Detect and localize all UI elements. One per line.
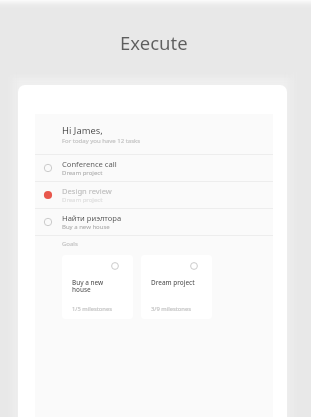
- staticText: Dream project: [62, 196, 103, 204]
- button[interactable]: Design review: [35, 182, 273, 208]
- button[interactable]: Dream project: [141, 255, 212, 319]
- staticText: Execute: [120, 30, 188, 55]
- staticText: Dream project: [151, 278, 195, 287]
- staticText: Design review: [62, 186, 112, 196]
- button[interactable]: Conference call: [35, 155, 273, 181]
- staticText: Dream project: [62, 169, 103, 177]
- staticText: Найти риэлтора: [62, 213, 122, 223]
- staticText: Goals: [62, 240, 78, 248]
- staticText: 1/5 milestones: [72, 305, 112, 313]
- staticText: 3/9 milestones: [151, 305, 191, 313]
- staticText: For today you have 12 tasks: [62, 137, 141, 145]
- button[interactable]: Найти риэлтора: [35, 209, 273, 235]
- button[interactable]: Buy a new house: [62, 255, 133, 319]
- staticText: Hi James,: [62, 124, 103, 137]
- staticText: Buy a new house: [72, 278, 104, 294]
- staticText: Conference call: [62, 159, 117, 169]
- staticText: Buy a new house: [62, 223, 110, 231]
